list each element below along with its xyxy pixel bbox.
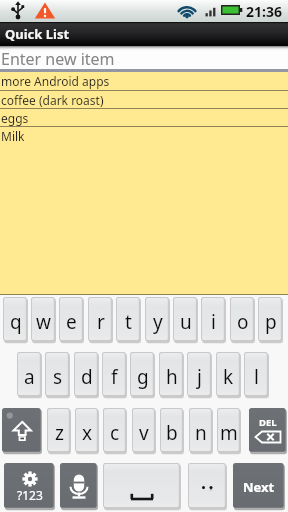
staticText: b xyxy=(166,420,178,446)
staticText: j xyxy=(197,364,202,390)
button[interactable]: u xyxy=(173,297,198,343)
staticText: Milk xyxy=(1,128,25,144)
staticText: m xyxy=(220,420,238,446)
staticText: Next xyxy=(243,478,275,496)
button[interactable]: s xyxy=(45,352,70,398)
button[interactable]: v xyxy=(132,408,156,454)
staticText: e xyxy=(66,309,77,335)
staticText: h xyxy=(166,364,178,390)
button[interactable]: m xyxy=(217,408,241,454)
button[interactable]: Delete xyxy=(249,408,287,454)
staticText: o xyxy=(237,309,249,335)
button[interactable]: t xyxy=(116,297,141,343)
staticText: s xyxy=(53,364,63,390)
staticText: r xyxy=(97,309,105,335)
button[interactable]: w xyxy=(31,297,56,343)
staticText: ?123 xyxy=(17,487,43,503)
staticText: x xyxy=(82,420,93,446)
button[interactable]: c xyxy=(103,408,127,454)
staticText: more Android apps xyxy=(1,73,110,89)
button[interactable]: j xyxy=(187,352,212,398)
staticText: eggs xyxy=(1,110,29,126)
button[interactable]: q xyxy=(3,297,28,343)
button[interactable]: f xyxy=(102,352,127,398)
staticText: a xyxy=(24,364,35,390)
button[interactable]: k xyxy=(216,352,241,398)
button[interactable]: a xyxy=(17,352,42,398)
button[interactable]: r xyxy=(88,297,113,343)
staticText: d xyxy=(81,364,93,390)
staticText: n xyxy=(195,420,207,446)
button[interactable]: more Android apps xyxy=(0,72,288,90)
staticText: z xyxy=(55,420,64,446)
button[interactable]: d xyxy=(74,352,99,398)
staticText: Enter new item xyxy=(1,48,115,70)
button[interactable]: Milk xyxy=(0,127,288,144)
staticText: w xyxy=(36,309,51,335)
button[interactable]: o xyxy=(230,297,255,343)
staticText: f xyxy=(111,364,118,390)
button[interactable]: y xyxy=(145,297,170,343)
staticText: y xyxy=(153,309,163,335)
button[interactable]: Space xyxy=(103,463,181,510)
staticText: Quick List xyxy=(5,25,70,43)
staticText: i xyxy=(211,309,216,335)
button[interactable]: g xyxy=(130,352,155,398)
staticText: v xyxy=(139,420,149,446)
button[interactable]: eggs xyxy=(0,109,288,126)
staticText: q xyxy=(10,309,22,335)
staticText: c xyxy=(110,420,120,446)
button[interactable]: h xyxy=(159,352,184,398)
staticText: g xyxy=(137,364,149,390)
button[interactable]: l xyxy=(244,352,269,398)
button[interactable]: b xyxy=(160,408,184,454)
button[interactable]: Next xyxy=(233,463,285,510)
staticText: coffee (dark roast) xyxy=(1,92,104,108)
staticText: k xyxy=(223,364,234,390)
staticText: u xyxy=(180,309,192,335)
staticText: DEL xyxy=(259,416,277,429)
staticText: 21:36 xyxy=(246,2,282,21)
button[interactable]: e xyxy=(59,297,84,343)
button[interactable]: i xyxy=(201,297,226,343)
button[interactable]: coffee (dark roast) xyxy=(0,91,288,108)
staticText: p xyxy=(265,309,277,335)
staticText: t xyxy=(125,309,132,335)
staticText: l xyxy=(254,364,259,390)
button[interactable]: Enter new item xyxy=(0,46,288,69)
button[interactable]: n xyxy=(189,408,213,454)
button[interactable]: Voice input xyxy=(60,463,98,510)
button[interactable]: p xyxy=(258,297,283,343)
button[interactable]: z xyxy=(47,408,71,454)
button[interactable]: Period and comma xyxy=(188,463,227,510)
button[interactable]: x xyxy=(75,408,99,454)
button[interactable]: Symbols xyxy=(4,463,55,510)
button[interactable]: Shift xyxy=(2,408,42,454)
